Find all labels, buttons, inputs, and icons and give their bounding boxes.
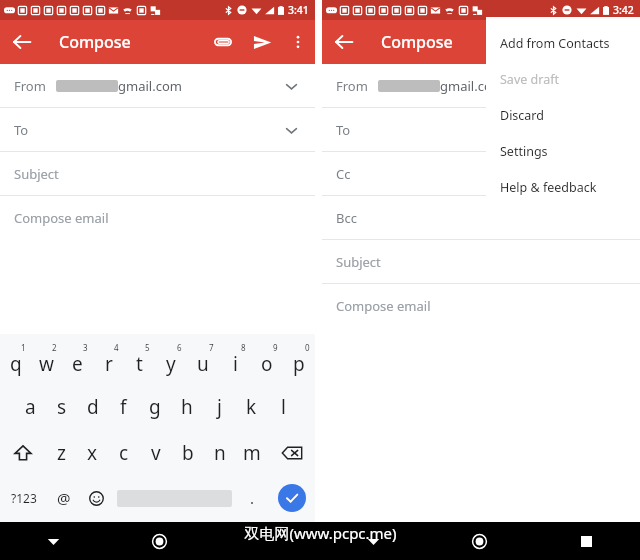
- staticText: Compose: [381, 31, 453, 53]
- button[interactable]: .: [236, 476, 268, 520]
- button[interactable]: p: [283, 338, 315, 384]
- button[interactable]: @: [48, 476, 80, 520]
- button[interactable]: d: [77, 384, 108, 430]
- button[interactable]: More options: [281, 25, 315, 59]
- staticText: p: [293, 351, 305, 377]
- staticText: 4: [114, 342, 119, 353]
- button[interactable]: n: [204, 430, 236, 476]
- button[interactable]: Add from Contacts: [486, 25, 640, 61]
- staticText: z: [57, 440, 66, 466]
- button[interactable]: From: [0, 64, 315, 107]
- button[interactable]: Subject: [0, 152, 315, 195]
- staticText: gmail.com: [118, 77, 182, 95]
- button[interactable]: Back: [322, 20, 366, 64]
- button[interactable]: Discard: [486, 97, 640, 133]
- button[interactable]: Home: [426, 522, 533, 560]
- staticText: l: [281, 394, 286, 420]
- staticText: a: [25, 394, 36, 420]
- button[interactable]: g: [139, 384, 171, 430]
- button[interactable]: r: [93, 338, 124, 384]
- staticText: s: [57, 394, 67, 420]
- button[interactable]: v: [140, 430, 172, 476]
- staticText: To: [336, 121, 351, 139]
- button[interactable]: Shift: [0, 430, 46, 476]
- button[interactable]: Save draft: [486, 61, 640, 97]
- button[interactable]: y: [155, 338, 187, 384]
- button[interactable]: Cc: [322, 152, 640, 195]
- staticText: v: [151, 440, 161, 466]
- button[interactable]: Back: [0, 20, 44, 64]
- button[interactable]: e: [62, 338, 93, 384]
- button[interactable]: i: [219, 338, 251, 384]
- button[interactable]: j: [203, 384, 235, 430]
- staticText: d: [87, 394, 99, 420]
- button[interactable]: o: [251, 338, 283, 384]
- button[interactable]: Send: [243, 23, 281, 61]
- staticText: e: [72, 351, 83, 377]
- button[interactable]: t: [124, 338, 155, 384]
- button[interactable]: To: [0, 108, 315, 151]
- button[interactable]: Compose email: [322, 284, 640, 327]
- button[interactable]: Compose email: [0, 196, 315, 239]
- button[interactable]: Expand: [277, 116, 305, 144]
- button[interactable]: [112, 476, 236, 520]
- button[interactable]: l: [267, 384, 299, 430]
- button[interactable]: Expand: [277, 72, 305, 100]
- button[interactable]: Settings: [486, 133, 640, 169]
- staticText: 5: [145, 342, 150, 353]
- staticText: r: [105, 351, 113, 377]
- button[interactable]: Recents: [533, 522, 640, 560]
- button[interactable]: Back: [320, 522, 426, 560]
- staticText: 9: [273, 342, 278, 353]
- staticText: @: [57, 488, 71, 508]
- button[interactable]: Bcc: [322, 196, 640, 239]
- staticText: o: [261, 351, 273, 377]
- button[interactable]: Help & feedback: [486, 169, 640, 205]
- staticText: h: [181, 394, 193, 420]
- staticText: Cc: [336, 165, 351, 183]
- button[interactable]: Home: [106, 522, 213, 560]
- button[interactable]: Recents: [213, 522, 320, 560]
- staticText: t: [136, 351, 143, 377]
- button[interactable]: From: [322, 64, 640, 107]
- button[interactable]: Attach file: [203, 22, 243, 62]
- staticText: j: [217, 394, 222, 420]
- staticText: Save draft: [500, 71, 559, 88]
- button[interactable]: f: [108, 384, 139, 430]
- staticText: Compose: [59, 31, 131, 53]
- staticText: k: [246, 394, 257, 420]
- button[interactable]: w: [31, 338, 62, 384]
- button[interactable]: b: [172, 430, 204, 476]
- button[interactable]: Done: [268, 476, 315, 520]
- button[interactable]: u: [187, 338, 219, 384]
- staticText: m: [243, 440, 261, 466]
- button[interactable]: To: [322, 108, 640, 151]
- staticText: c: [119, 440, 129, 466]
- staticText: 2: [52, 342, 57, 353]
- button[interactable]: x: [77, 430, 108, 476]
- staticText: 双电网(www.pcpc.me): [244, 523, 397, 543]
- button[interactable]: Back: [0, 522, 106, 560]
- staticText: 6: [177, 342, 182, 353]
- staticText: From: [336, 77, 368, 95]
- staticText: i: [233, 351, 238, 377]
- staticText: Subject: [336, 253, 381, 271]
- button[interactable]: Emoji: [80, 476, 112, 520]
- button[interactable]: c: [108, 430, 140, 476]
- button[interactable]: Subject: [322, 240, 640, 283]
- button[interactable]: h: [171, 384, 203, 430]
- staticText: Discard: [500, 107, 544, 124]
- button[interactable]: ?123: [0, 476, 48, 520]
- button[interactable]: z: [46, 430, 77, 476]
- button[interactable]: q: [0, 338, 31, 384]
- staticText: 3: [83, 342, 88, 353]
- staticText: .: [250, 488, 255, 508]
- button[interactable]: k: [235, 384, 267, 430]
- staticText: x: [87, 440, 98, 466]
- staticText: f: [120, 394, 127, 420]
- button[interactable]: a: [15, 384, 46, 430]
- staticText: g: [149, 394, 161, 420]
- button[interactable]: s: [46, 384, 77, 430]
- button[interactable]: m: [236, 430, 268, 476]
- button[interactable]: Backspace: [268, 430, 315, 476]
